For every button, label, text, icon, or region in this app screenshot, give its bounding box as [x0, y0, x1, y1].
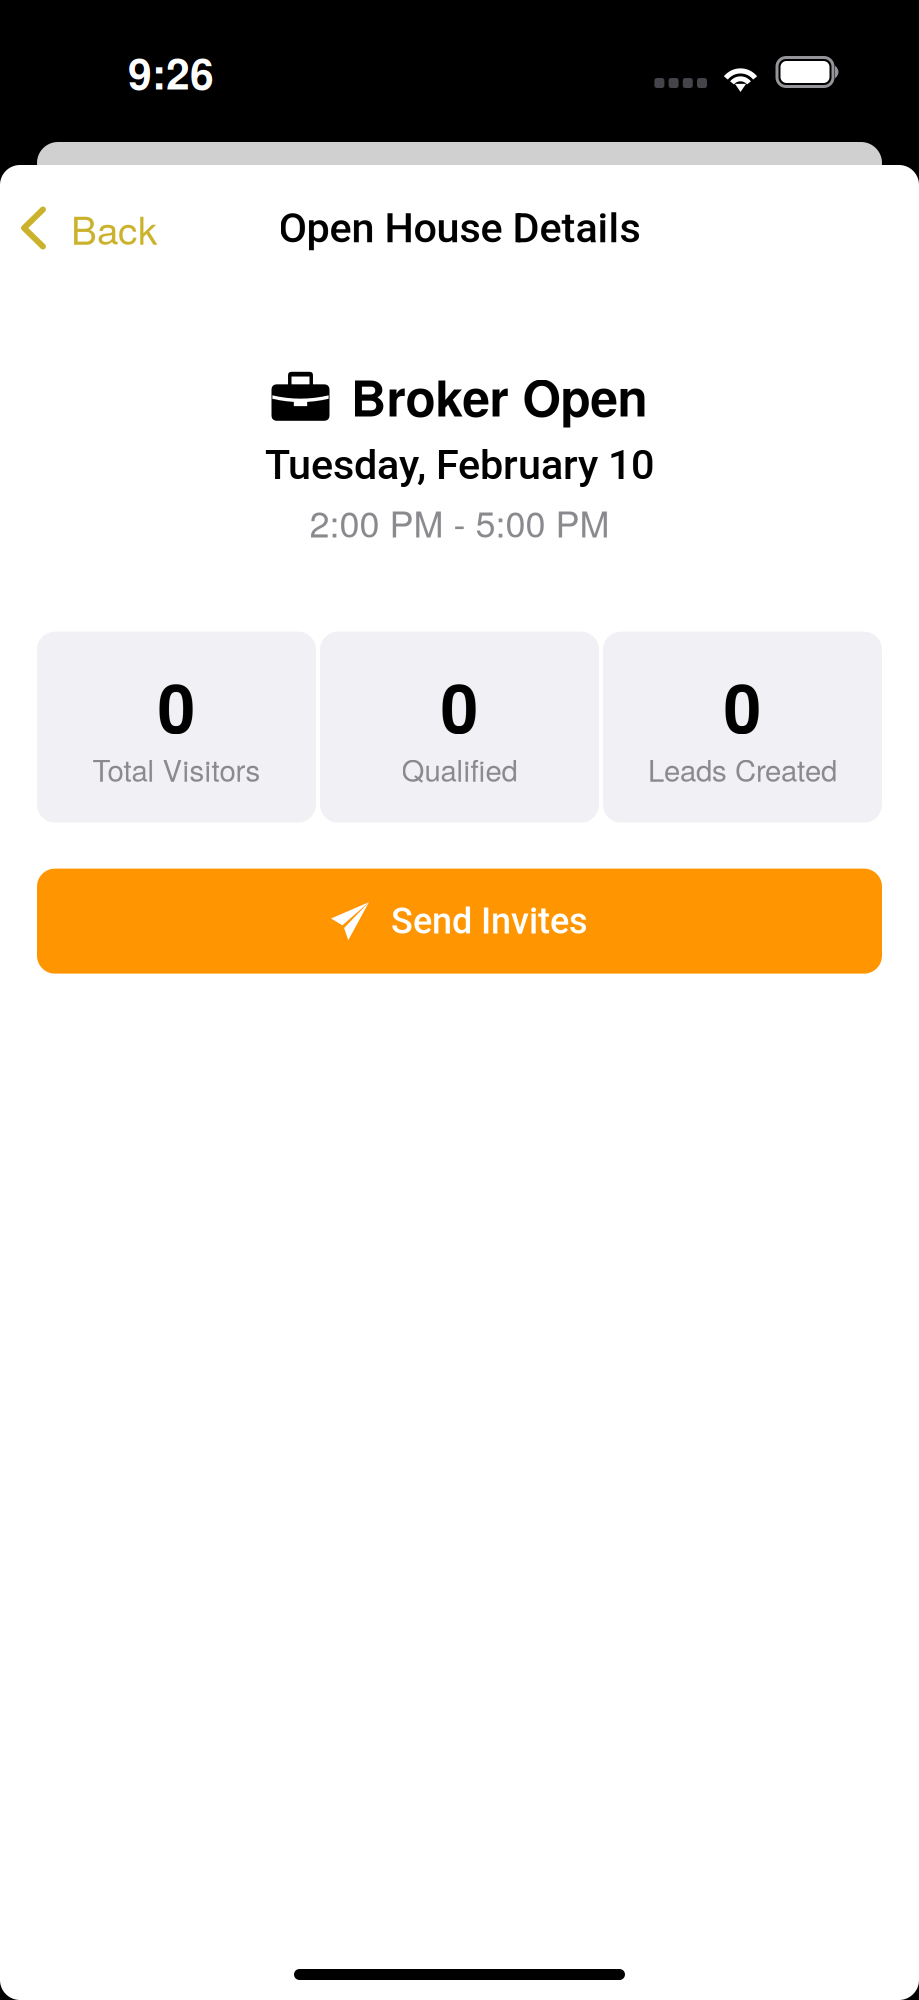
button[interactable]: Back [0, 182, 230, 274]
staticText: Leads Created [648, 748, 837, 790]
staticText: 0 [157, 657, 195, 754]
staticText: Tuesday, February 10 [265, 441, 654, 489]
staticText: 2:00 PM - 5:00 PM [309, 496, 609, 548]
staticText: 9:26 [128, 41, 214, 103]
staticText: 0 [723, 657, 761, 754]
staticText: Qualified [401, 748, 517, 790]
staticText: Back [71, 200, 157, 256]
staticText: Total Visitors [92, 748, 260, 790]
staticText: Broker Open [350, 361, 647, 432]
staticText: Open House Details [278, 204, 640, 252]
staticText: 0 [440, 657, 478, 754]
button[interactable]: Send Invites [0, 823, 919, 974]
staticText: Send Invites [391, 900, 588, 942]
